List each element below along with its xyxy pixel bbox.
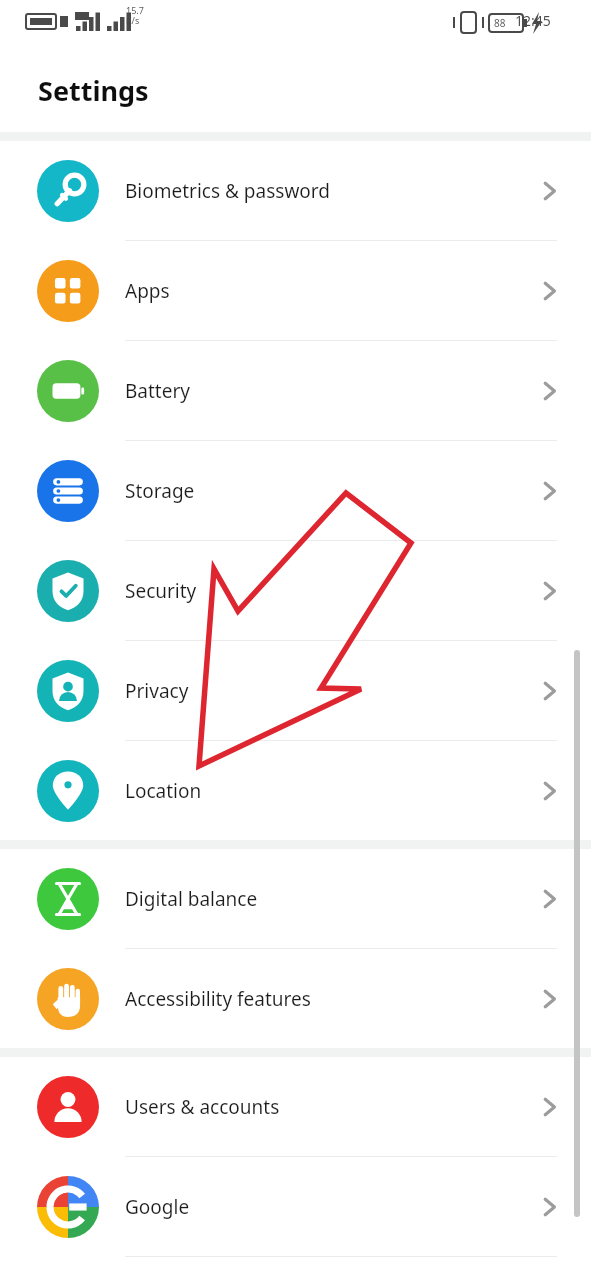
button[interactable]: Storage	[0, 441, 591, 540]
staticText: Privacy	[125, 678, 533, 704]
button[interactable]: Google	[0, 1157, 591, 1256]
other: Open Privacy	[533, 674, 567, 708]
other: Open Google	[533, 1190, 567, 1224]
other: Open Location	[533, 774, 567, 808]
staticText: Storage	[125, 478, 533, 504]
staticText: Biometrics & password	[125, 178, 533, 204]
staticText: 15.7 K/s	[126, 4, 144, 26]
staticText: Settings	[38, 72, 149, 109]
other: Open Accessibility features	[533, 982, 567, 1016]
staticText: Accessibility features	[125, 986, 533, 1012]
other: Open Security	[533, 574, 567, 608]
staticText: 88	[494, 16, 506, 30]
button[interactable]: Accessibility features	[0, 949, 591, 1048]
other: Open Digital balance	[533, 882, 567, 916]
other: Open Biometrics & password	[533, 174, 567, 208]
staticText: Apps	[125, 278, 533, 304]
staticText: Battery	[125, 378, 533, 404]
button[interactable]: Digital balance	[0, 849, 591, 948]
other: Open Storage	[533, 474, 567, 508]
staticText: Google	[125, 1194, 533, 1220]
staticText: 12:45	[515, 11, 551, 30]
other: Open Battery	[533, 374, 567, 408]
staticText: Digital balance	[125, 886, 533, 912]
button[interactable]: Battery	[0, 341, 591, 440]
button[interactable]: Privacy	[0, 641, 591, 740]
other: Open Users & accounts	[533, 1090, 567, 1124]
button[interactable]: Security	[0, 541, 591, 640]
button[interactable]: Biometrics & password	[0, 141, 591, 240]
button[interactable]: Location	[0, 741, 591, 840]
other: Open Apps	[533, 274, 567, 308]
button[interactable]: Apps	[0, 241, 591, 340]
staticText: Users & accounts	[125, 1094, 533, 1120]
staticText: Location	[125, 778, 533, 804]
button[interactable]: Users & accounts	[0, 1057, 591, 1156]
staticText: Security	[125, 578, 533, 604]
